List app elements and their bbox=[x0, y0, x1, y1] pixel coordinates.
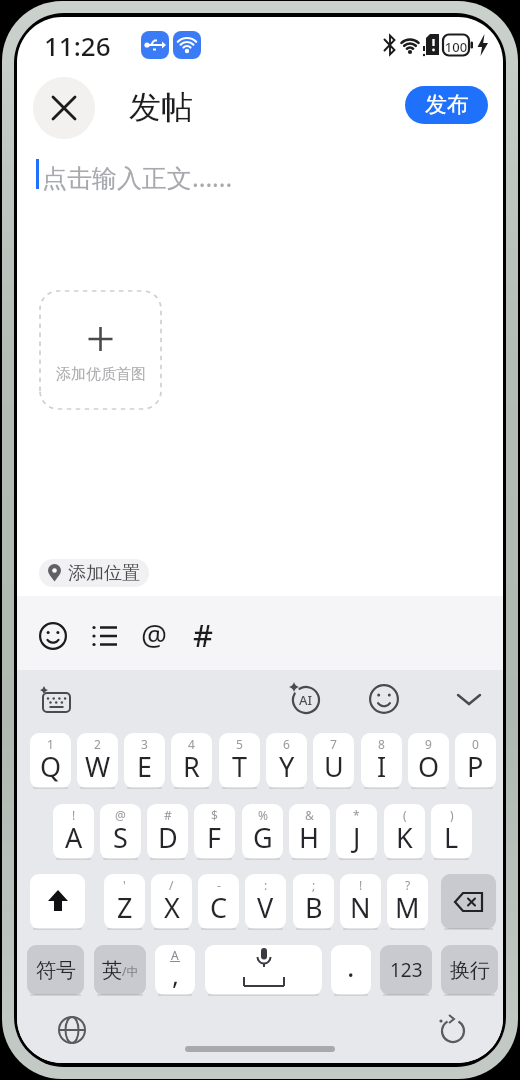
staticText: W bbox=[85, 748, 111, 785]
button[interactable]: 123 bbox=[380, 945, 432, 995]
button[interactable] bbox=[30, 874, 85, 929]
staticText: 发布 bbox=[425, 91, 469, 119]
button[interactable]: @ bbox=[100, 804, 141, 859]
button[interactable] bbox=[39, 686, 73, 714]
button[interactable]: 英 bbox=[94, 945, 146, 995]
button[interactable]: 2 bbox=[77, 733, 118, 788]
staticText: . bbox=[347, 947, 355, 985]
staticText: ? bbox=[405, 877, 411, 893]
staticText: & bbox=[305, 807, 314, 823]
staticText: $ bbox=[211, 807, 218, 823]
button[interactable] bbox=[441, 874, 496, 929]
button[interactable]: ( bbox=[384, 804, 425, 859]
staticText: N bbox=[350, 889, 371, 926]
staticText: G bbox=[253, 819, 273, 856]
button[interactable] bbox=[369, 684, 399, 714]
button[interactable] bbox=[436, 1014, 468, 1046]
button[interactable] bbox=[91, 622, 119, 650]
button[interactable]: $ bbox=[194, 804, 235, 859]
staticText: 123 bbox=[390, 957, 423, 983]
staticText: 11:26 bbox=[44, 28, 111, 62]
button[interactable]: * bbox=[336, 804, 377, 859]
staticText: 添加位置 bbox=[68, 562, 140, 585]
staticText: 点击输入正文...... bbox=[42, 160, 233, 194]
staticText: AI bbox=[299, 691, 313, 709]
staticText: P bbox=[467, 748, 484, 785]
button[interactable] bbox=[454, 690, 484, 708]
button[interactable]: : bbox=[245, 874, 286, 929]
button[interactable]: ; bbox=[293, 874, 334, 929]
staticText: 1 bbox=[47, 736, 54, 752]
button[interactable]: 9 bbox=[408, 733, 449, 788]
staticText: E bbox=[137, 748, 153, 785]
staticText: : bbox=[264, 877, 268, 893]
staticText: 6 bbox=[283, 736, 290, 752]
staticText: - bbox=[217, 877, 221, 893]
staticText: J bbox=[353, 819, 361, 856]
button[interactable]: 换行 bbox=[441, 945, 498, 995]
button[interactable]: 3 bbox=[124, 733, 165, 788]
button[interactable]: . bbox=[331, 945, 371, 995]
button[interactable]: # bbox=[193, 614, 229, 656]
staticText: H bbox=[299, 819, 320, 856]
staticText: L bbox=[444, 819, 459, 856]
button[interactable]: 7 bbox=[313, 733, 354, 788]
button[interactable]: % bbox=[242, 804, 283, 859]
staticText: ! bbox=[72, 807, 76, 823]
staticText: ' bbox=[123, 877, 126, 893]
button[interactable]: 6 bbox=[266, 733, 307, 788]
staticText: K bbox=[396, 819, 413, 856]
staticText: B bbox=[305, 889, 323, 926]
staticText: Z bbox=[117, 889, 133, 926]
button[interactable] bbox=[39, 622, 67, 650]
staticText: 0 bbox=[472, 736, 479, 752]
button[interactable]: A bbox=[155, 945, 195, 995]
button[interactable] bbox=[56, 1014, 88, 1046]
button[interactable]: 添加优质首图 bbox=[39, 290, 162, 410]
staticText: 发帖 bbox=[129, 87, 193, 127]
button[interactable]: 5 bbox=[219, 733, 260, 788]
button[interactable]: ! bbox=[53, 804, 94, 859]
button[interactable]: & bbox=[289, 804, 330, 859]
staticText: # bbox=[193, 614, 214, 656]
staticText: ! bbox=[359, 877, 363, 893]
staticText: 英 bbox=[102, 958, 122, 983]
staticText: 3 bbox=[141, 736, 148, 752]
button[interactable]: / bbox=[151, 874, 192, 929]
staticText: 2 bbox=[94, 736, 101, 752]
button[interactable]: 8 bbox=[361, 733, 402, 788]
staticText: 符号 bbox=[36, 958, 76, 983]
button[interactable] bbox=[33, 77, 95, 139]
staticText: A bbox=[65, 819, 83, 856]
button[interactable]: ' bbox=[104, 874, 145, 929]
staticText: 5 bbox=[236, 736, 243, 752]
button[interactable]: AI bbox=[288, 682, 322, 716]
staticText: * bbox=[353, 807, 360, 823]
staticText: C bbox=[210, 889, 228, 926]
staticText: 9 bbox=[425, 736, 432, 752]
button[interactable] bbox=[205, 945, 322, 995]
staticText: @ bbox=[141, 615, 168, 654]
button[interactable]: ! bbox=[340, 874, 381, 929]
button[interactable]: 发布 bbox=[405, 86, 488, 124]
button[interactable]: ? bbox=[387, 874, 428, 929]
button[interactable]: # bbox=[147, 804, 188, 859]
button[interactable]: 0 bbox=[455, 733, 496, 788]
staticText: 100 bbox=[444, 38, 468, 56]
button[interactable]: - bbox=[198, 874, 239, 929]
button[interactable]: 添加位置 bbox=[39, 559, 149, 587]
staticText: R bbox=[183, 748, 200, 785]
staticText: Y bbox=[279, 748, 295, 785]
staticText: ; bbox=[312, 877, 316, 893]
button[interactable]: ) bbox=[431, 804, 472, 859]
staticText: , bbox=[172, 957, 179, 992]
button[interactable]: 符号 bbox=[27, 945, 84, 995]
staticText: X bbox=[164, 889, 180, 926]
staticText: ) bbox=[450, 807, 454, 823]
staticText: F bbox=[207, 819, 222, 856]
staticText: 7 bbox=[330, 736, 337, 752]
button[interactable]: @ bbox=[141, 615, 177, 655]
staticText: S bbox=[113, 819, 128, 856]
button[interactable]: 4 bbox=[171, 733, 212, 788]
button[interactable]: 1 bbox=[30, 733, 71, 788]
